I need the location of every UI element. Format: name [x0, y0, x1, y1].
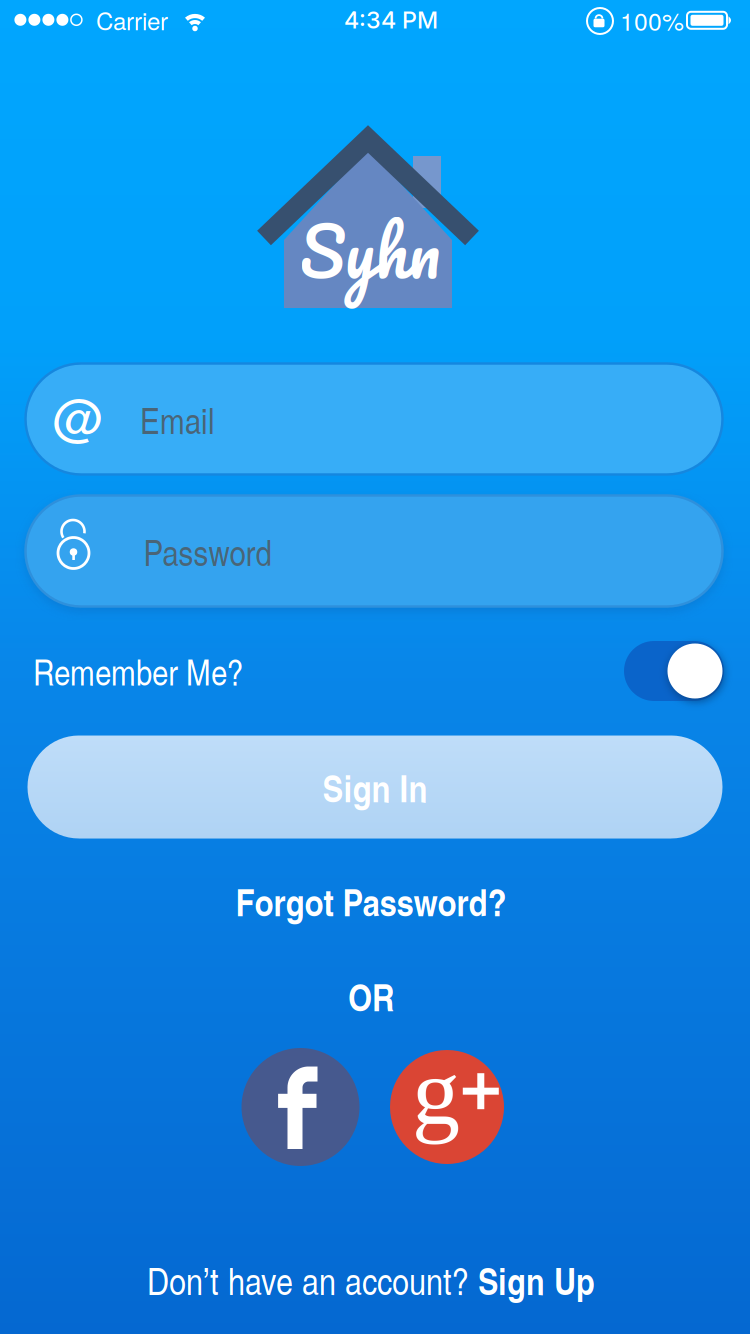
button[interactable]: Sign In: [27, 735, 722, 838]
staticText: @: [52, 379, 103, 451]
staticText: Sign In: [322, 760, 427, 814]
staticText: Email: [140, 395, 215, 444]
staticText: 4:34 PM: [344, 6, 438, 34]
staticText: Remember Me?: [33, 646, 243, 696]
button[interactable]: Sign in with Facebook: [241, 1048, 359, 1166]
button[interactable]: Password: [25, 495, 722, 606]
button[interactable]: Remember Me: [624, 641, 724, 701]
staticText: Carrier: [96, 3, 168, 37]
staticText: g: [412, 1039, 460, 1145]
button[interactable]: Forgot Password?: [235, 874, 506, 928]
button[interactable]: Sign in with Google: [390, 1050, 504, 1164]
staticText: Sign Up: [478, 1254, 595, 1306]
button[interactable]: Email: [25, 363, 722, 474]
staticText: 100%: [620, 2, 684, 38]
staticText: Password: [143, 527, 271, 576]
staticText: Forgot Password?: [235, 874, 506, 928]
staticText: Don’t have an account?: [147, 1254, 478, 1306]
staticText: OR: [348, 969, 394, 1023]
staticText: Syhn: [299, 194, 440, 308]
button[interactable]: Sign Up: [478, 1254, 595, 1306]
